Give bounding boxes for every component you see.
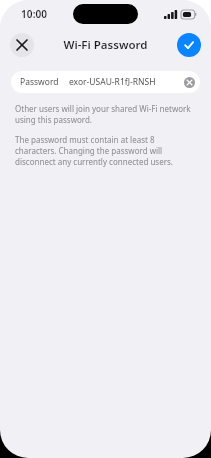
staticText: 10:00	[21, 7, 48, 21]
staticText: exor-USAU-R1fJ-RNSH	[69, 76, 156, 88]
button[interactable]: Clear text	[184, 77, 195, 88]
staticText: The password must contain at least 8 cha…	[15, 134, 196, 167]
staticText: Other users will join your shared Wi-Fi …	[15, 103, 196, 125]
button[interactable]: Done	[177, 33, 201, 57]
staticText: Wi-Fi Password	[63, 37, 148, 53]
button[interactable]: Close	[10, 33, 34, 57]
staticText: Password	[20, 76, 59, 88]
button[interactable]: Password	[11, 71, 200, 93]
